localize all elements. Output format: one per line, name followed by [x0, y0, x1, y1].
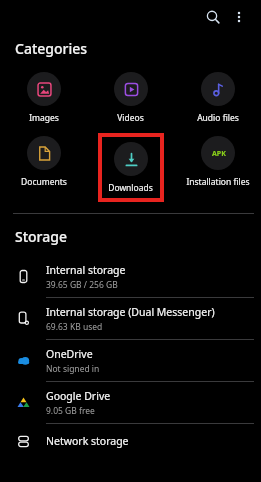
staticText: Downloads	[108, 182, 153, 194]
staticText: Audio files	[197, 112, 239, 124]
button[interactable]: Network storage	[0, 424, 261, 458]
staticText: Images	[29, 112, 59, 124]
button[interactable]: Internal storage (Dual Messenger)	[0, 298, 261, 340]
staticText: Storage	[15, 227, 67, 246]
button[interactable]: Search	[200, 4, 226, 30]
staticText: Internal storage	[46, 263, 126, 277]
staticText: Google Drive	[46, 389, 111, 403]
staticText: Categories	[15, 39, 88, 58]
staticText: APK	[212, 149, 226, 159]
staticText: Videos	[117, 112, 144, 124]
staticText: Internal storage (Dual Messenger)	[46, 305, 215, 319]
staticText: OneDrive	[46, 347, 93, 361]
button[interactable]: OneDrive	[0, 340, 261, 382]
staticText: Documents	[21, 176, 67, 188]
button[interactable]: Images	[0, 69, 87, 127]
button[interactable]: Google Drive	[0, 382, 261, 424]
staticText: Not signed in	[46, 363, 100, 375]
staticText: Installation files	[186, 176, 250, 188]
staticText: 9.05 GB free	[46, 405, 95, 417]
button[interactable]: Videos	[87, 69, 174, 127]
staticText: 39.65 GB / 256 GB	[46, 279, 118, 291]
button[interactable]: Downloads	[87, 139, 174, 197]
button[interactable]: Internal storage	[0, 256, 261, 298]
button[interactable]: Documents	[0, 133, 87, 191]
staticText: Network storage	[46, 434, 129, 448]
button[interactable]: APK	[174, 133, 261, 191]
button[interactable]: Audio files	[174, 69, 261, 127]
staticText: 69.63 KB used	[46, 321, 103, 333]
button[interactable]: More options	[226, 4, 252, 30]
